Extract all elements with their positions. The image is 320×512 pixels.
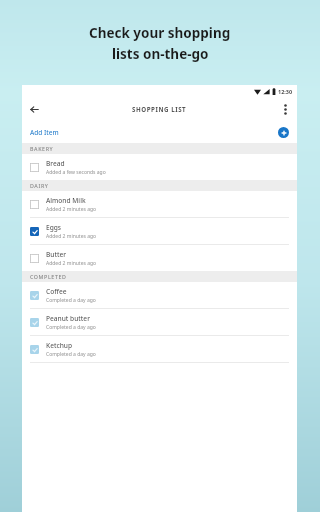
button[interactable]: Butter bbox=[22, 245, 297, 271]
staticText: Completed a day ago bbox=[46, 297, 96, 304]
staticText: SHOPPING LIST bbox=[132, 105, 187, 113]
staticText: lists on-the-go bbox=[112, 45, 209, 63]
button[interactable]: Bread bbox=[22, 154, 297, 180]
staticText: DAIRY bbox=[30, 182, 49, 189]
button[interactable]: Eggs bbox=[22, 218, 297, 244]
button[interactable]: Almond Milk bbox=[22, 191, 297, 217]
staticText: Check your shopping bbox=[89, 24, 231, 42]
staticText: 12:30 bbox=[278, 88, 293, 95]
button[interactable]: Add item bbox=[278, 127, 289, 138]
staticText: Added 2 minutes ago bbox=[46, 260, 97, 267]
staticText: Completed a day ago bbox=[46, 324, 96, 331]
staticText: Peanut butter bbox=[46, 314, 90, 323]
button[interactable]: Peanut butter bbox=[22, 309, 297, 335]
staticText: BAKERY bbox=[30, 145, 54, 152]
button[interactable]: Ketchup bbox=[22, 336, 297, 362]
staticText: Added a few seconds ago bbox=[46, 169, 106, 176]
button[interactable]: Add Item bbox=[22, 121, 297, 143]
button[interactable]: Coffee bbox=[22, 282, 297, 308]
staticText: COMPLETED bbox=[30, 273, 67, 280]
button[interactable]: More options bbox=[273, 97, 297, 121]
staticText: Almond Milk bbox=[46, 196, 86, 205]
button[interactable]: Back bbox=[22, 97, 46, 121]
staticText: Added 2 minutes ago bbox=[46, 206, 97, 213]
staticText: Add Item bbox=[30, 128, 59, 137]
staticText: Coffee bbox=[46, 287, 67, 296]
staticText: Completed a day ago bbox=[46, 351, 96, 358]
staticText: Added 2 minutes ago bbox=[46, 233, 97, 240]
staticText: Bread bbox=[46, 159, 65, 168]
staticText: Eggs bbox=[46, 223, 62, 232]
staticText: Ketchup bbox=[46, 341, 73, 350]
staticText: Butter bbox=[46, 250, 67, 259]
